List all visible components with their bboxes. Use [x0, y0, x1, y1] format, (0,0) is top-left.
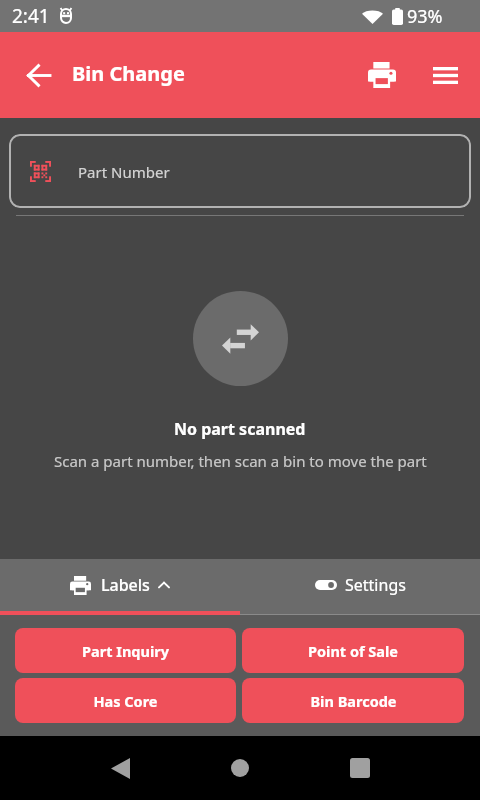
button[interactable]: Print [357, 32, 407, 118]
staticText: Part Number [78, 162, 170, 182]
staticText: Bin Barcode [310, 691, 397, 711]
staticText: Part Inquiry [82, 641, 169, 661]
button[interactable]: Back [0, 32, 77, 118]
staticText: Has Core [93, 691, 158, 711]
button[interactable]: Settings [240, 559, 480, 615]
staticText: No part scanned [174, 418, 306, 440]
button[interactable]: Home [180, 736, 300, 800]
button[interactable]: Point of Sale [242, 628, 464, 673]
staticText: Scan a part number, then scan a bin to m… [54, 451, 427, 471]
button[interactable]: Menu [420, 32, 470, 118]
staticText: Settings [345, 574, 406, 596]
button[interactable]: Part Inquiry [15, 628, 236, 673]
button[interactable]: Recents [300, 736, 420, 800]
staticText: Bin Change [72, 60, 185, 87]
button[interactable]: Part Number [9, 134, 471, 208]
button[interactable]: Labels [0, 559, 240, 615]
button[interactable]: Has Core [15, 678, 236, 723]
button[interactable]: Bin Barcode [242, 678, 464, 723]
staticText: Labels [101, 574, 150, 596]
staticText: 93% [407, 4, 443, 29]
button[interactable]: Back [60, 736, 180, 800]
staticText: Point of Sale [308, 641, 398, 661]
staticText: 2:41 [12, 3, 50, 29]
